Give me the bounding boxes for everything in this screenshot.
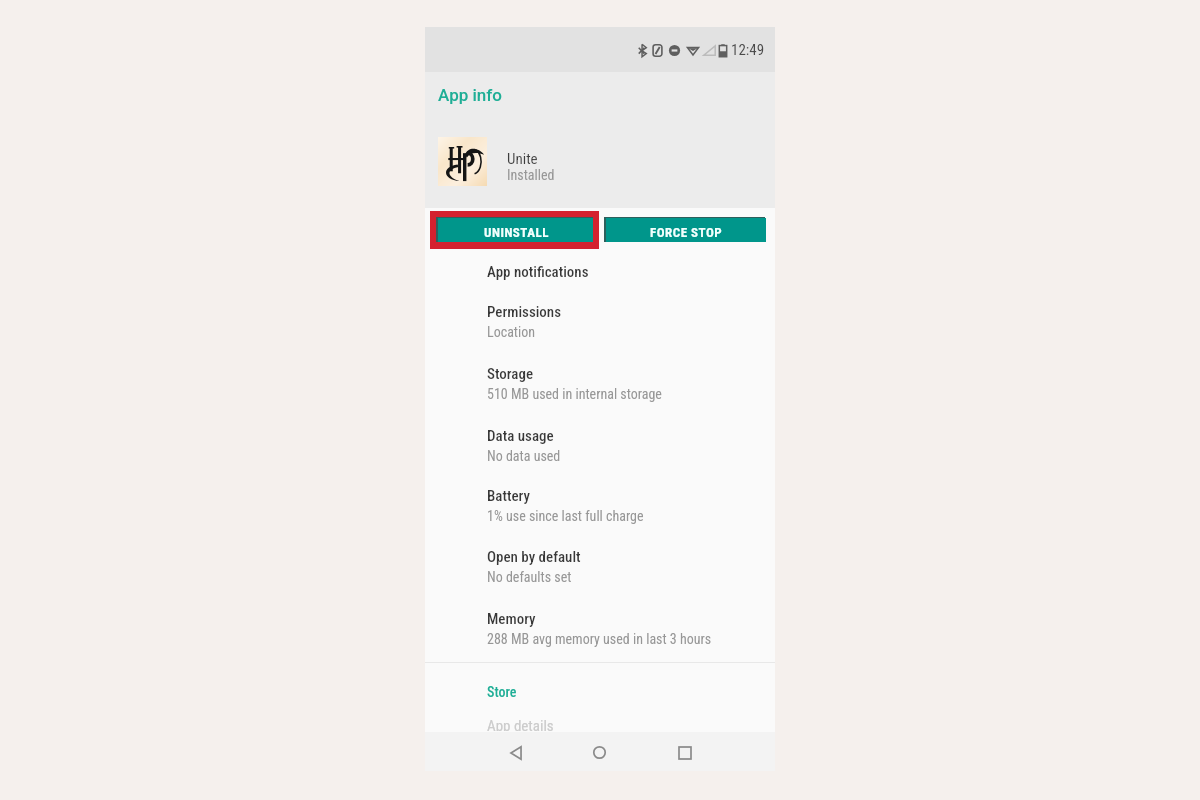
button[interactable]: Recent apps	[662, 733, 708, 772]
staticText: No defaults set	[487, 569, 572, 585]
button[interactable]: App details	[425, 717, 775, 731]
staticText: Data usage	[487, 427, 554, 445]
staticText: Store	[487, 684, 517, 700]
staticText: UNINSTALL	[484, 225, 549, 240]
staticText: Memory	[487, 610, 536, 628]
staticText: App details	[487, 717, 554, 731]
staticText: Unite	[507, 150, 538, 168]
staticText: Battery	[487, 487, 531, 505]
button[interactable]: FORCE STOP	[604, 217, 765, 242]
staticText: Installed	[507, 167, 555, 183]
button[interactable]: Storage	[425, 361, 775, 423]
button[interactable]: Data usage	[425, 423, 775, 483]
staticText: 510 MB used in internal storage	[487, 386, 662, 402]
staticText: 288 MB avg memory used in last 3 hours	[487, 631, 712, 647]
staticText: FORCE STOP	[650, 225, 723, 240]
button[interactable]: Store	[425, 673, 775, 706]
button[interactable]: Permissions	[425, 299, 775, 361]
staticText: Open by default	[487, 548, 581, 566]
staticText: 12:49	[731, 41, 765, 59]
staticText: App notifications	[487, 263, 589, 281]
button[interactable]: App notifications	[425, 259, 775, 299]
button[interactable]: Open by default	[425, 544, 775, 606]
staticText: Location	[487, 324, 536, 340]
staticText: Permissions	[487, 303, 561, 321]
button[interactable]: Back	[493, 733, 539, 772]
button[interactable]: Battery	[425, 483, 775, 544]
button[interactable]: UNINSTALL	[436, 217, 593, 242]
staticText: Storage	[487, 365, 534, 383]
button[interactable]: Memory	[425, 606, 775, 662]
staticText: App info	[438, 85, 502, 105]
staticText: 1% use since last full charge	[487, 508, 644, 524]
staticText: No data used	[487, 448, 561, 464]
button[interactable]: Home	[576, 733, 622, 772]
